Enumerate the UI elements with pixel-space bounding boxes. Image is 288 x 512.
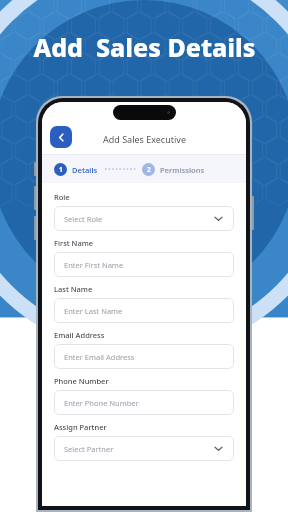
staticText: Select Partner (64, 444, 114, 454)
button[interactable]: Back (50, 126, 72, 148)
staticText: Enter Phone Number (64, 398, 139, 408)
staticText: Select Role (64, 214, 103, 224)
staticText: Role (54, 192, 70, 202)
button[interactable]: 2 (142, 163, 205, 176)
staticText: Last Name (54, 284, 93, 294)
staticText: Enter Email Address (64, 352, 135, 362)
button[interactable]: Enter First Name (54, 252, 234, 277)
button[interactable]: Enter Email Address (54, 344, 234, 369)
staticText: 1 (59, 165, 63, 174)
staticText: Enter First Name (64, 260, 124, 270)
staticText: Enter Last Name (64, 306, 123, 316)
staticText: Email Address (54, 330, 105, 340)
button[interactable]: 1 (54, 163, 98, 176)
button[interactable]: Select Role (54, 206, 234, 231)
button[interactable]: Select Partner (54, 436, 234, 461)
button[interactable]: Enter Last Name (54, 298, 234, 323)
button[interactable]: Enter Phone Number (54, 390, 234, 415)
staticText: 2 (147, 165, 151, 174)
staticText: Add Sales Details (33, 30, 256, 64)
staticText: Add Sales Executive (103, 133, 186, 145)
staticText: Assign Partner (54, 422, 107, 432)
staticText: Permissions (160, 165, 205, 175)
staticText: Details (72, 165, 98, 175)
staticText: First Name (54, 238, 94, 248)
staticText: Phone Number (54, 376, 109, 386)
